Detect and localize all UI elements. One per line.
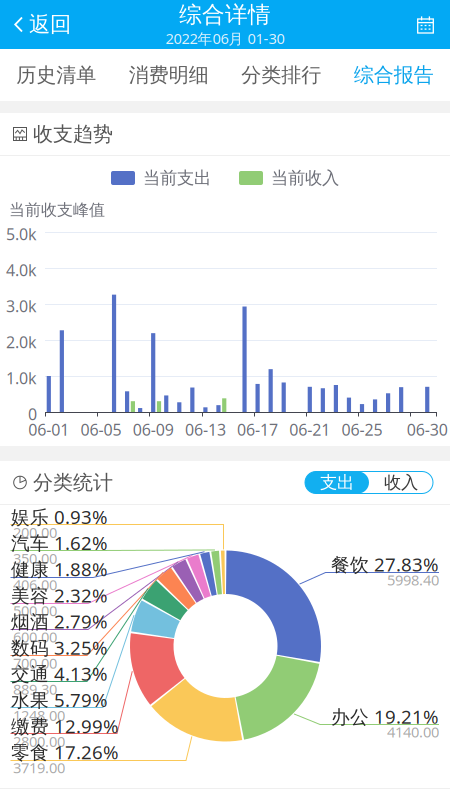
staticText: 06-01 <box>28 419 69 440</box>
staticText: 5998.40 <box>387 570 439 589</box>
staticText: 406.00 <box>13 575 57 594</box>
staticText: 分类统计 <box>33 470 113 495</box>
staticText: 2.0k <box>6 331 37 353</box>
staticText: 汽车 1.62% <box>11 530 108 555</box>
staticText: 4.0k <box>6 259 37 281</box>
staticText: 06-25 <box>341 419 382 440</box>
staticText: 0 <box>28 403 37 425</box>
staticText: 200.00 <box>13 522 57 542</box>
staticText: 综合报告 <box>354 63 434 87</box>
button[interactable]: 选择日期 <box>403 4 450 45</box>
staticText: 当前收入 <box>271 167 339 189</box>
button[interactable]: 综合报告 <box>337 49 450 101</box>
staticText: 历史清单 <box>16 63 96 87</box>
staticText: 餐饮 27.83% <box>331 552 439 577</box>
staticText: 06-13 <box>185 419 226 440</box>
staticText: 06-09 <box>133 419 174 440</box>
staticText: 综合详情 <box>179 1 271 29</box>
button[interactable]: 分类排行 <box>225 49 337 101</box>
staticText: 889.30 <box>13 679 57 699</box>
staticText: 零食 17.26% <box>11 740 119 764</box>
staticText: 水果 5.79% <box>11 687 108 712</box>
staticText: 1248.00 <box>13 705 65 725</box>
staticText: 500.00 <box>13 601 57 620</box>
staticText: 当前支出 <box>143 167 211 189</box>
staticText: 当前收支峰值 <box>9 200 105 220</box>
button[interactable]: 支出 <box>305 471 369 493</box>
staticText: 4140.00 <box>387 722 439 742</box>
staticText: 06-17 <box>237 419 278 440</box>
staticText: 3719.00 <box>13 758 65 777</box>
staticText: 健康 1.88% <box>11 557 108 581</box>
staticText: 2800.00 <box>13 732 65 751</box>
staticText: 返回 <box>29 11 71 38</box>
staticText: 3.0k <box>6 295 37 317</box>
staticText: 烟酒 2.79% <box>11 609 108 634</box>
staticText: 600.00 <box>13 627 57 647</box>
staticText: 收入 <box>384 472 418 493</box>
staticText: 收支趋势 <box>33 122 113 146</box>
staticText: 06-21 <box>289 419 330 440</box>
staticText: 5.0k <box>6 223 37 245</box>
button[interactable]: 消费明细 <box>112 49 225 101</box>
staticText: 2022年06月 01-30 <box>165 29 284 48</box>
staticText: 350.00 <box>13 549 57 568</box>
staticText: 700.00 <box>13 653 57 673</box>
button[interactable]: 收入 <box>369 471 433 493</box>
button[interactable]: 历史清单 <box>0 49 112 101</box>
staticText: 消费明细 <box>129 63 209 87</box>
staticText: 分类排行 <box>241 63 321 87</box>
staticText: 06-30 <box>407 419 448 440</box>
staticText: 办公 19.21% <box>331 704 439 729</box>
staticText: 美容 2.32% <box>11 583 108 608</box>
staticText: 1.0k <box>6 367 37 389</box>
staticText: 支出 <box>320 472 354 493</box>
staticText: 06-05 <box>80 419 121 440</box>
staticText: 娱乐 0.93% <box>11 504 108 529</box>
staticText: 数码 3.25% <box>11 635 108 660</box>
staticText: 交通 4.13% <box>11 661 108 686</box>
button[interactable]: 返回 <box>0 1 71 48</box>
staticText: 缴费 12.99% <box>11 713 119 738</box>
